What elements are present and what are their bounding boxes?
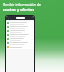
button[interactable] [6,29,34,33]
button[interactable] [6,41,34,45]
staticText: cuotas y ofertas [3,7,35,12]
button[interactable] [6,33,34,37]
button[interactable]: Back [7,17,9,19]
button[interactable] [6,37,34,41]
button[interactable] [6,45,34,49]
button[interactable] [6,25,34,29]
staticText: Recibir información de [3,2,42,7]
button[interactable] [6,21,34,25]
